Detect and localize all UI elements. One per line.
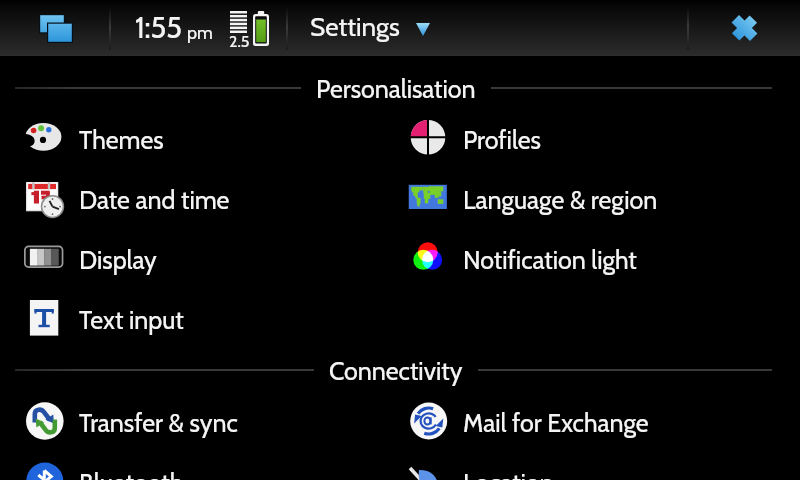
- staticText: Profiles: [463, 125, 541, 155]
- staticText: 1:55: [135, 10, 182, 45]
- button[interactable]: Profiles: [384, 110, 768, 170]
- button[interactable]: Notification light: [384, 230, 768, 290]
- button[interactable]: Text input: [0, 290, 384, 350]
- button[interactable]: 1:55: [110, 0, 287, 56]
- button[interactable]: Location: [384, 453, 768, 480]
- button[interactable]: Mail for Exchange: [384, 393, 768, 453]
- staticText: Transfer & sync: [79, 408, 238, 438]
- staticText: Personalisation: [316, 74, 476, 104]
- button[interactable]: Display: [0, 230, 384, 290]
- button[interactable]: Transfer & sync: [0, 393, 384, 453]
- staticText: Settings: [310, 11, 400, 43]
- staticText: Bluetooth: [79, 468, 184, 480]
- staticText: Connectivity: [329, 356, 463, 386]
- staticText: Mail for Exchange: [463, 408, 649, 438]
- button[interactable]: Task switcher: [0, 0, 110, 56]
- button[interactable]: Bluetooth: [0, 453, 384, 480]
- staticText: Location: [463, 468, 554, 480]
- staticText: Date and time: [79, 185, 230, 215]
- button[interactable]: Close: [688, 0, 800, 56]
- staticText: Text input: [79, 305, 184, 335]
- button[interactable]: Themes: [0, 110, 384, 170]
- staticText: Language & region: [463, 185, 658, 215]
- staticText: Themes: [79, 125, 164, 155]
- button[interactable]: Language & region: [384, 170, 768, 230]
- staticText: pm: [187, 22, 213, 44]
- staticText: Display: [79, 245, 157, 275]
- staticText: Notification light: [463, 245, 637, 275]
- button[interactable]: Settings: [287, 0, 688, 56]
- button[interactable]: Date and time: [0, 170, 384, 230]
- staticText: 2.5: [229, 32, 250, 51]
